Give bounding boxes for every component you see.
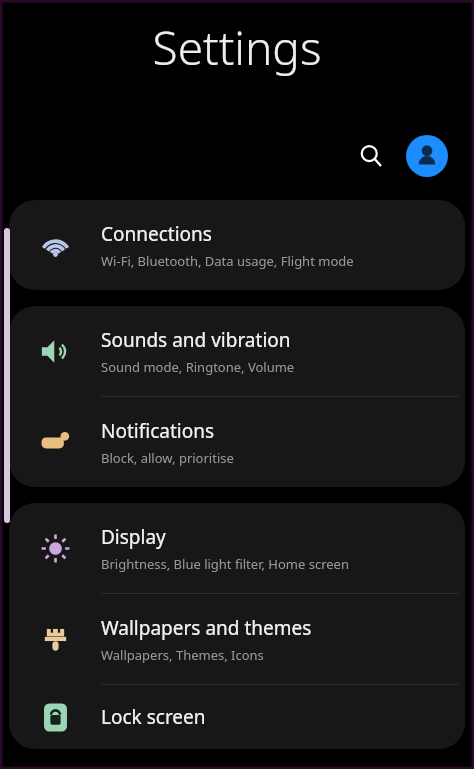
button[interactable]: Sounds and vibration [9, 306, 465, 396]
staticText: Notifications [101, 418, 215, 444]
button[interactable]: Wallpapers and themes [9, 594, 465, 684]
button[interactable]: Connections [9, 200, 465, 290]
staticText: Connections [101, 221, 212, 247]
staticText: Sound mode, Ringtone, Volume [101, 358, 295, 376]
staticText: Settings [0, 16, 474, 79]
button[interactable]: Lock screen [9, 685, 465, 749]
staticText: Sounds and vibration [101, 327, 291, 353]
staticText: Wallpapers, Themes, Icons [101, 646, 264, 664]
staticText: Lock screen [101, 704, 206, 730]
button[interactable]: Account [406, 135, 448, 177]
button[interactable]: Notifications [9, 397, 465, 487]
staticText: Brightness, Blue light filter, Home scre… [101, 555, 349, 573]
staticText: Block, allow, prioritise [101, 449, 234, 467]
button[interactable]: Search [348, 133, 394, 179]
staticText: Display [101, 524, 166, 550]
staticText: Wi-Fi, Bluetooth, Data usage, Flight mod… [101, 252, 354, 270]
button[interactable]: Display [9, 503, 465, 593]
staticText: Wallpapers and themes [101, 615, 312, 641]
